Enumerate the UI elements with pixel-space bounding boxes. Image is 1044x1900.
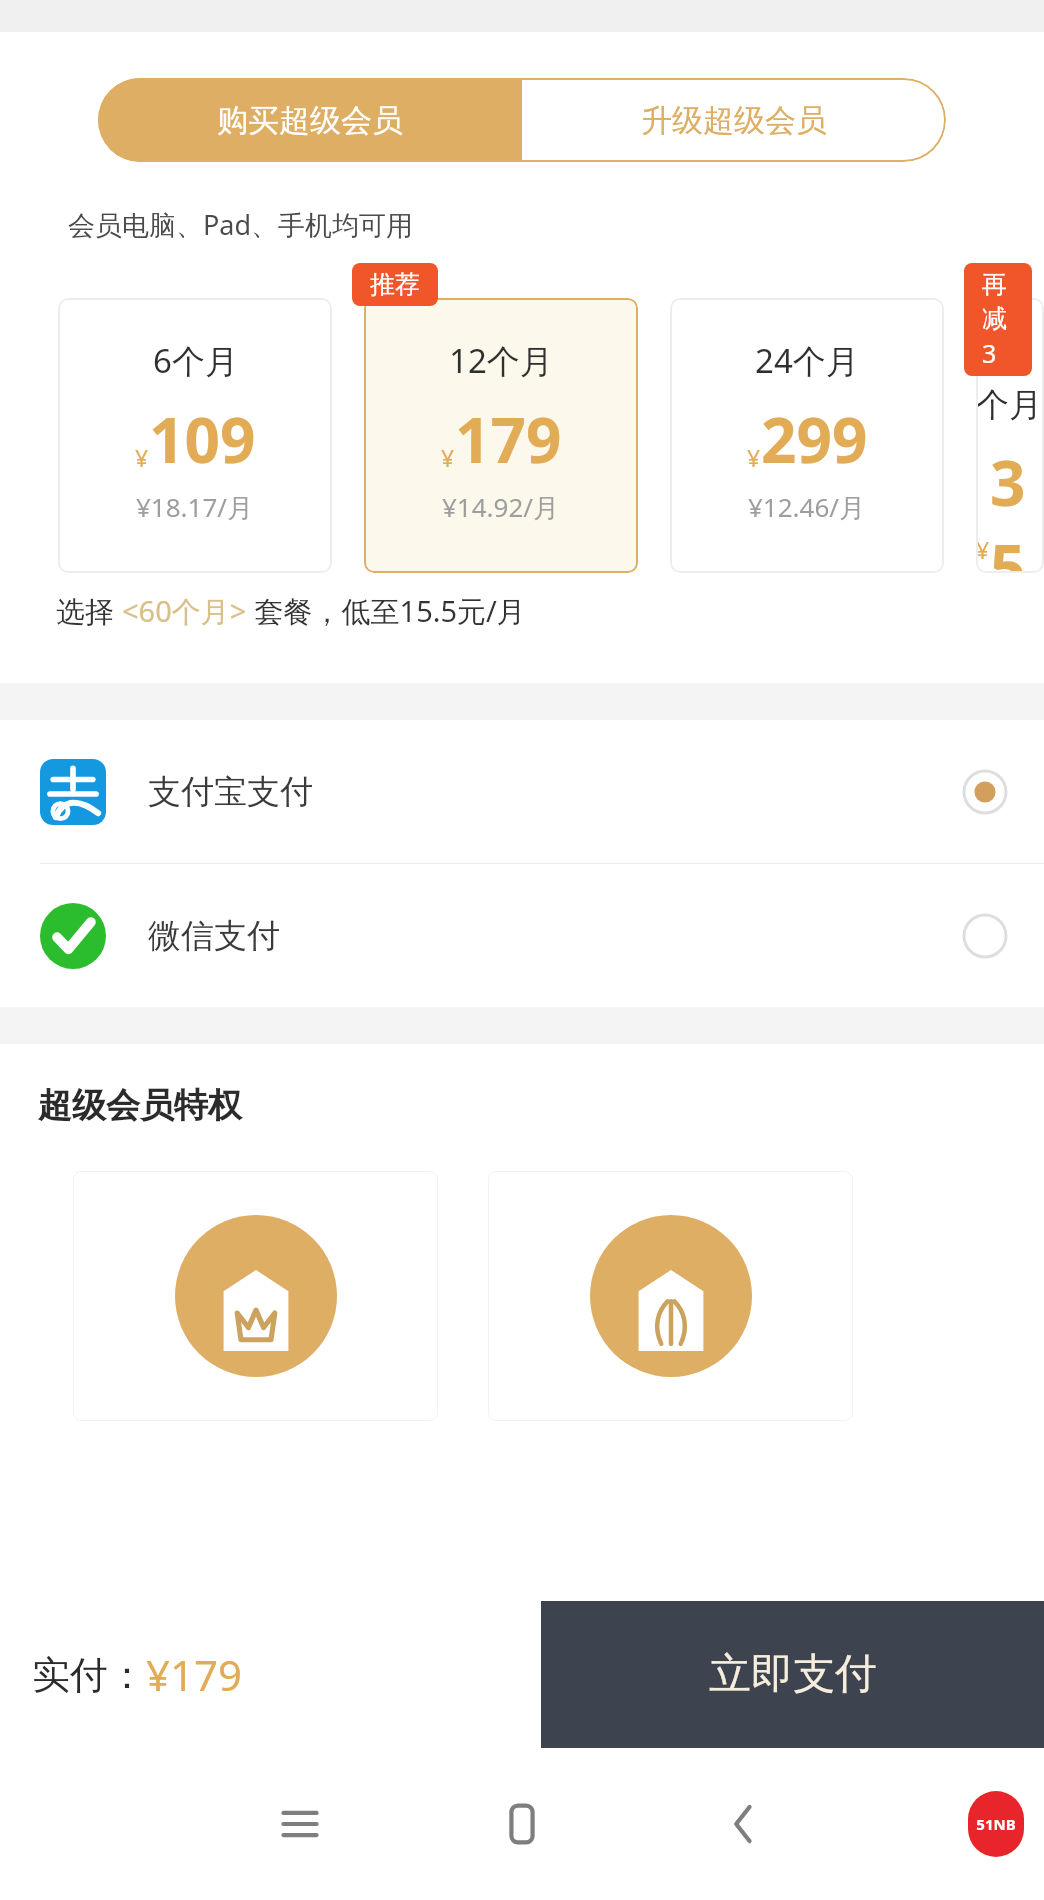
- button[interactable]: 购买超级会员: [98, 78, 522, 162]
- staticText: 立即支付: [709, 1648, 877, 1701]
- staticText: 24个月: [755, 338, 859, 383]
- button[interactable]: 立即支付: [541, 1601, 1044, 1748]
- staticText: 套餐，低至15.5元/月: [247, 591, 526, 631]
- button[interactable]: 6个月: [58, 298, 332, 573]
- staticText: 实付：: [32, 1651, 146, 1699]
- staticText: ¥: [441, 442, 455, 473]
- other: Selected payment: [962, 769, 1008, 815]
- button[interactable]: <60个月>: [122, 591, 247, 631]
- staticText: 升级超级会员: [641, 101, 827, 140]
- staticText: 购买超级会员: [217, 101, 403, 140]
- staticText: 179: [455, 397, 562, 481]
- staticText: ¥: [135, 442, 149, 473]
- staticText: 选择: [56, 591, 122, 631]
- button[interactable]: [73, 1171, 438, 1421]
- staticText: ¥12.46/月: [748, 489, 866, 525]
- staticText: 推荐: [370, 269, 420, 300]
- staticText: 再减3: [982, 269, 1014, 370]
- button[interactable]: [488, 1171, 853, 1421]
- staticText: 60个月: [976, 338, 1044, 426]
- staticText: ¥: [747, 442, 761, 473]
- staticText: 会员电脑、Pad、手机均可用: [68, 206, 414, 243]
- staticText: 109: [149, 397, 256, 481]
- staticText: 12个月: [449, 338, 553, 383]
- staticText: 微信支付: [148, 915, 280, 957]
- button[interactable]: 12个月: [364, 298, 638, 573]
- staticText: ¥: [976, 534, 990, 565]
- staticText: 超级会员特权: [38, 1084, 242, 1127]
- button[interactable]: Menu: [250, 1774, 350, 1874]
- button[interactable]: 24个月: [670, 298, 944, 573]
- button[interactable]: 升级超级会员: [522, 78, 946, 162]
- staticText: ¥18.17/月: [136, 489, 254, 525]
- button[interactable]: Back: [694, 1774, 794, 1874]
- staticText: 支付宝支付: [148, 771, 313, 813]
- staticText: 299: [761, 397, 868, 481]
- button[interactable]: 支付宝支付: [0, 720, 1044, 863]
- staticText: 359: [990, 440, 1044, 573]
- button[interactable]: 微信支付: [0, 864, 1044, 1007]
- staticText: 6个月: [153, 338, 238, 383]
- other: Select payment: [962, 913, 1008, 959]
- button[interactable]: Home: [472, 1774, 572, 1874]
- staticText: ¥179: [146, 1646, 243, 1703]
- staticText: 51NB: [976, 1814, 1016, 1834]
- button[interactable]: 60个月: [976, 298, 1044, 573]
- staticText: ¥14.92/月: [442, 489, 560, 525]
